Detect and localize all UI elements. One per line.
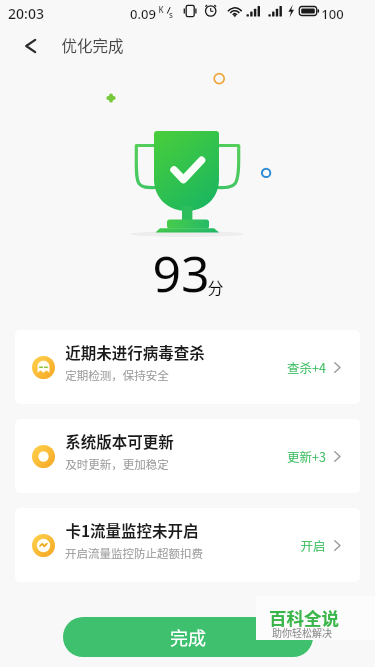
staticText: 0.09 bbox=[130, 5, 156, 23]
staticText: 完成 bbox=[170, 624, 206, 650]
button[interactable]: 近期未进行病毒查杀 bbox=[15, 330, 360, 404]
staticText: s bbox=[169, 9, 173, 20]
staticText: 系统版本可更新 bbox=[65, 430, 174, 452]
staticText: 近期未进行病毒查杀 bbox=[65, 341, 205, 363]
button[interactable]: Back bbox=[12, 28, 48, 63]
staticText: 更新+3 bbox=[287, 447, 326, 465]
staticText: 及时更新，更加稳定 bbox=[65, 456, 169, 473]
staticText: 分 bbox=[207, 275, 224, 298]
staticText: 100 bbox=[321, 5, 344, 23]
staticText: 20:03 bbox=[8, 4, 44, 23]
staticText: 查杀+4 bbox=[287, 358, 326, 376]
staticText: 开启 bbox=[300, 536, 326, 554]
button[interactable]: 完成 bbox=[63, 617, 313, 657]
staticText: 卡1流量监控未开启 bbox=[65, 519, 199, 541]
staticText: 优化完成 bbox=[61, 34, 124, 56]
staticText: 开启流量监控防止超额扣费 bbox=[65, 545, 203, 562]
button[interactable]: 卡1流量监控未开启 bbox=[15, 508, 360, 582]
staticText: 百科全说 bbox=[269, 605, 339, 630]
button[interactable]: 系统版本可更新 bbox=[15, 419, 360, 493]
staticText: 93 bbox=[152, 239, 210, 307]
staticText: K bbox=[158, 4, 164, 15]
staticText: 助你轻松解决 bbox=[272, 625, 332, 639]
staticText: 定期检测，保持安全 bbox=[65, 367, 169, 384]
